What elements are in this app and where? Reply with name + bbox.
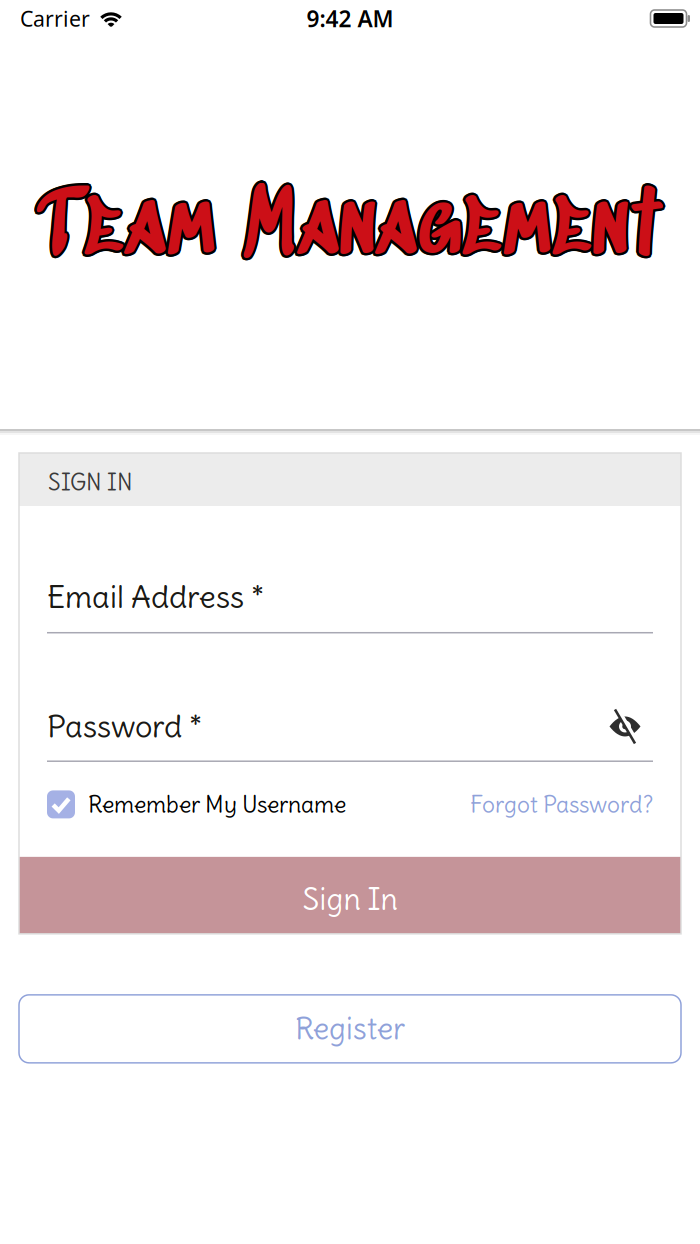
button[interactable]: Forgot Password? xyxy=(470,790,653,819)
staticText: Forgot Password? xyxy=(470,790,653,819)
button[interactable]: Show Password xyxy=(605,706,645,746)
button[interactable]: Register xyxy=(19,995,681,1063)
button[interactable]: Sign In xyxy=(19,857,681,934)
staticText: Carrier xyxy=(20,4,90,33)
staticText: Email Address * xyxy=(47,578,264,616)
staticText: Team Management xyxy=(42,175,662,284)
staticText: Team Management xyxy=(40,178,660,286)
staticText: SIGN IN xyxy=(48,468,133,497)
staticText: Team Management xyxy=(40,173,660,281)
button[interactable]: Remember My Username xyxy=(47,790,346,819)
staticText: Sign In xyxy=(302,880,397,918)
staticText: Team Management xyxy=(40,175,660,284)
staticText: Register xyxy=(295,1010,405,1048)
staticText: 9:42 AM xyxy=(306,3,393,33)
staticText: Team Management xyxy=(42,174,662,282)
staticText: Remember My Username xyxy=(88,790,346,819)
staticText: Team Management xyxy=(38,177,658,285)
staticText: Password * xyxy=(47,707,202,745)
staticText: Team Management xyxy=(37,175,657,284)
staticText: Team Management xyxy=(42,177,662,285)
staticText: Team Management xyxy=(38,174,658,282)
